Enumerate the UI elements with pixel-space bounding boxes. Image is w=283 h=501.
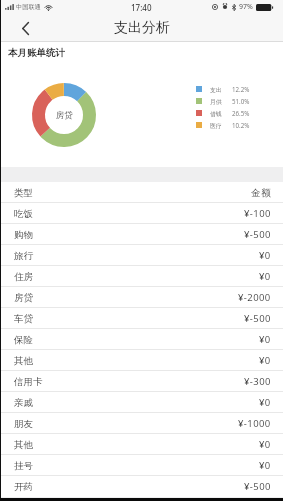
staticText: 本月账单统计 — [8, 47, 65, 59]
staticText: 房贷 — [56, 110, 73, 121]
staticText: 住房 — [14, 271, 33, 283]
staticText: 开药 — [14, 481, 33, 493]
staticText: ¥0 — [259, 333, 271, 346]
button[interactable]: 吃饭 — [0, 203, 283, 224]
staticText: 月供 — [210, 98, 222, 105]
button[interactable]: 其他 — [0, 434, 283, 455]
staticText: ¥-100 — [244, 207, 271, 220]
staticText: 其他 — [14, 439, 33, 451]
staticText: 房贷 — [14, 292, 33, 304]
staticText: ¥0 — [259, 396, 271, 409]
staticText: 医疗 — [210, 122, 222, 129]
staticText: ¥0 — [259, 354, 271, 367]
staticText: ¥-500 — [244, 228, 271, 241]
staticText: ¥-500 — [244, 312, 271, 325]
button[interactable]: 朋友 — [0, 413, 283, 434]
button[interactable]: 返回 — [7, 14, 43, 42]
staticText: 其他 — [14, 355, 33, 367]
staticText: 12.2% — [232, 85, 250, 93]
staticText: ¥0 — [259, 249, 271, 262]
button[interactable]: 亲戚 — [0, 392, 283, 413]
button[interactable]: 房贷 — [0, 287, 283, 308]
staticText: 10.2% — [232, 121, 250, 129]
staticText: 97% — [239, 2, 253, 12]
staticText: 信用卡 — [14, 376, 43, 388]
staticText: ¥-300 — [244, 375, 271, 388]
button[interactable]: 挂号 — [0, 455, 283, 476]
staticText: 金额 — [251, 187, 271, 199]
button[interactable]: 旅行 — [0, 245, 283, 266]
staticText: 保险 — [14, 334, 33, 346]
button[interactable]: 其他 — [0, 350, 283, 371]
staticText: 购物 — [14, 229, 33, 241]
button[interactable]: 类型 — [0, 182, 283, 203]
staticText: 亲戚 — [14, 397, 33, 409]
button[interactable]: 住房 — [0, 266, 283, 287]
staticText: 车贷 — [14, 313, 33, 325]
staticText: ¥-2000 — [238, 291, 271, 304]
staticText: 中国联通 — [16, 3, 41, 11]
staticText: ¥-1000 — [238, 417, 271, 430]
staticText: 类型 — [14, 187, 33, 199]
staticText: 挂号 — [14, 460, 33, 472]
staticText: 吃饭 — [14, 208, 33, 220]
button[interactable]: 购物 — [0, 224, 283, 245]
staticText: ¥0 — [259, 459, 271, 472]
button[interactable]: 开药 — [0, 476, 283, 497]
staticText: 朋友 — [14, 418, 33, 430]
staticText: 支出 — [210, 86, 222, 93]
staticText: 17:40 — [131, 2, 152, 13]
staticText: 26.5% — [232, 109, 250, 117]
staticText: 51.0% — [232, 97, 250, 105]
staticText: ¥0 — [259, 438, 271, 451]
staticText: ¥0 — [259, 270, 271, 283]
staticText: ¥-500 — [244, 480, 271, 493]
button[interactable]: 保险 — [0, 329, 283, 350]
button[interactable]: 车贷 — [0, 308, 283, 329]
button[interactable]: 信用卡 — [0, 371, 283, 392]
staticText: 借钱 — [210, 110, 222, 117]
staticText: 旅行 — [14, 250, 33, 262]
staticText: 支出分析 — [114, 19, 170, 37]
